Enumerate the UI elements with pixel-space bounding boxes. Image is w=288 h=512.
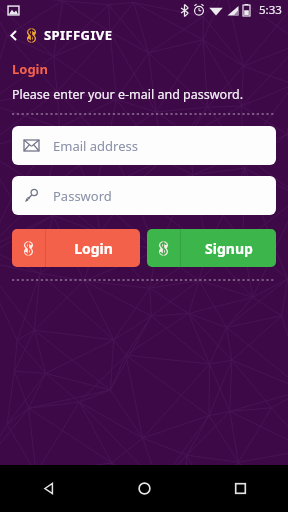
button[interactable]: Home	[96, 465, 192, 512]
staticText: Signup	[205, 239, 253, 258]
button[interactable]: Back	[0, 465, 96, 512]
staticText: Please enter your e-mail and password.	[12, 86, 244, 103]
button[interactable]: Signup	[147, 229, 276, 267]
button[interactable]: Back	[5, 27, 21, 43]
staticText: 5:33	[259, 2, 282, 18]
staticText: Email address	[53, 137, 138, 155]
staticText: Password	[53, 187, 112, 205]
staticText: SPIFFGIVE	[44, 26, 113, 44]
staticText: Login	[74, 239, 113, 258]
button[interactable]: Login	[12, 229, 140, 267]
staticText: Login	[12, 60, 48, 78]
button[interactable]: Email address	[12, 126, 276, 165]
button[interactable]: Password	[12, 176, 276, 215]
button[interactable]: Recent apps	[192, 465, 288, 512]
